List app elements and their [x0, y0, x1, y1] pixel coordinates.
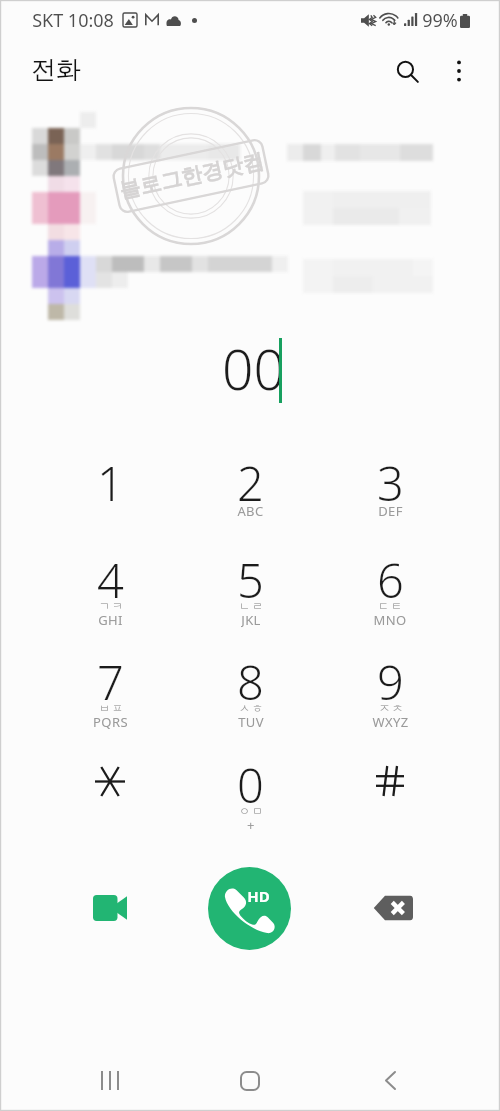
staticText: 7 [97, 650, 124, 714]
staticText: 6 [377, 548, 404, 612]
button[interactable] [320, 732, 460, 827]
staticText: 4 [97, 548, 124, 612]
button[interactable]: 7 [40, 629, 180, 724]
staticText: PQRS [93, 713, 128, 730]
button[interactable]: 5 [180, 527, 320, 622]
staticText: DEF [378, 502, 403, 520]
staticText: 2 [237, 451, 264, 515]
staticText: MNO [373, 611, 407, 628]
staticText: 전화 [31, 54, 81, 85]
button[interactable]: Recents [82, 1052, 138, 1108]
button[interactable]: 3 [320, 430, 460, 525]
staticText: 5 [237, 548, 264, 612]
staticText: JKL [241, 611, 261, 628]
button[interactable]: 2 [180, 430, 320, 525]
button[interactable]: Call [208, 867, 291, 950]
button[interactable]: 1 [40, 430, 180, 525]
staticText: 99% [422, 8, 458, 33]
staticText: SKT 10:08 [32, 8, 114, 33]
staticText: 3 [377, 451, 404, 515]
staticText: + [247, 816, 255, 833]
staticText: ㅈㅊ [378, 701, 404, 715]
staticText: GHI [98, 611, 123, 628]
button[interactable]: 6 [320, 527, 460, 622]
staticText: 8 [237, 650, 264, 714]
staticText: WXYZ [372, 713, 409, 730]
staticText: 1 [97, 451, 124, 515]
button[interactable]: 9 [320, 629, 460, 724]
button[interactable]: Search [385, 49, 429, 93]
staticText: 00 [222, 331, 285, 406]
staticText: ㅇㅁ [238, 804, 264, 818]
staticText: ㄱㅋ [98, 599, 124, 613]
button[interactable]: Backspace [368, 883, 418, 933]
button[interactable]: More options [437, 49, 481, 93]
button[interactable]: 4 [40, 527, 180, 622]
button[interactable] [40, 732, 180, 827]
button[interactable]: 8 [180, 629, 320, 724]
staticText: TUV [238, 713, 264, 730]
staticText: ㅂㅍ [98, 701, 124, 715]
button[interactable]: 0 [180, 732, 320, 827]
staticText: 0 [237, 753, 264, 817]
staticText: ㄴㄹ [238, 599, 264, 613]
staticText: 블로그한경닷컴 [117, 148, 266, 204]
button[interactable]: Home [222, 1053, 278, 1109]
staticText: ABC [237, 502, 264, 520]
staticText: 9 [377, 650, 404, 714]
button[interactable]: Back [362, 1052, 418, 1108]
staticText: HD [247, 886, 270, 906]
staticText: ㄷㅌ [377, 599, 403, 613]
button[interactable]: Video call [85, 883, 135, 933]
staticText: ㅅㅎ [238, 701, 264, 715]
